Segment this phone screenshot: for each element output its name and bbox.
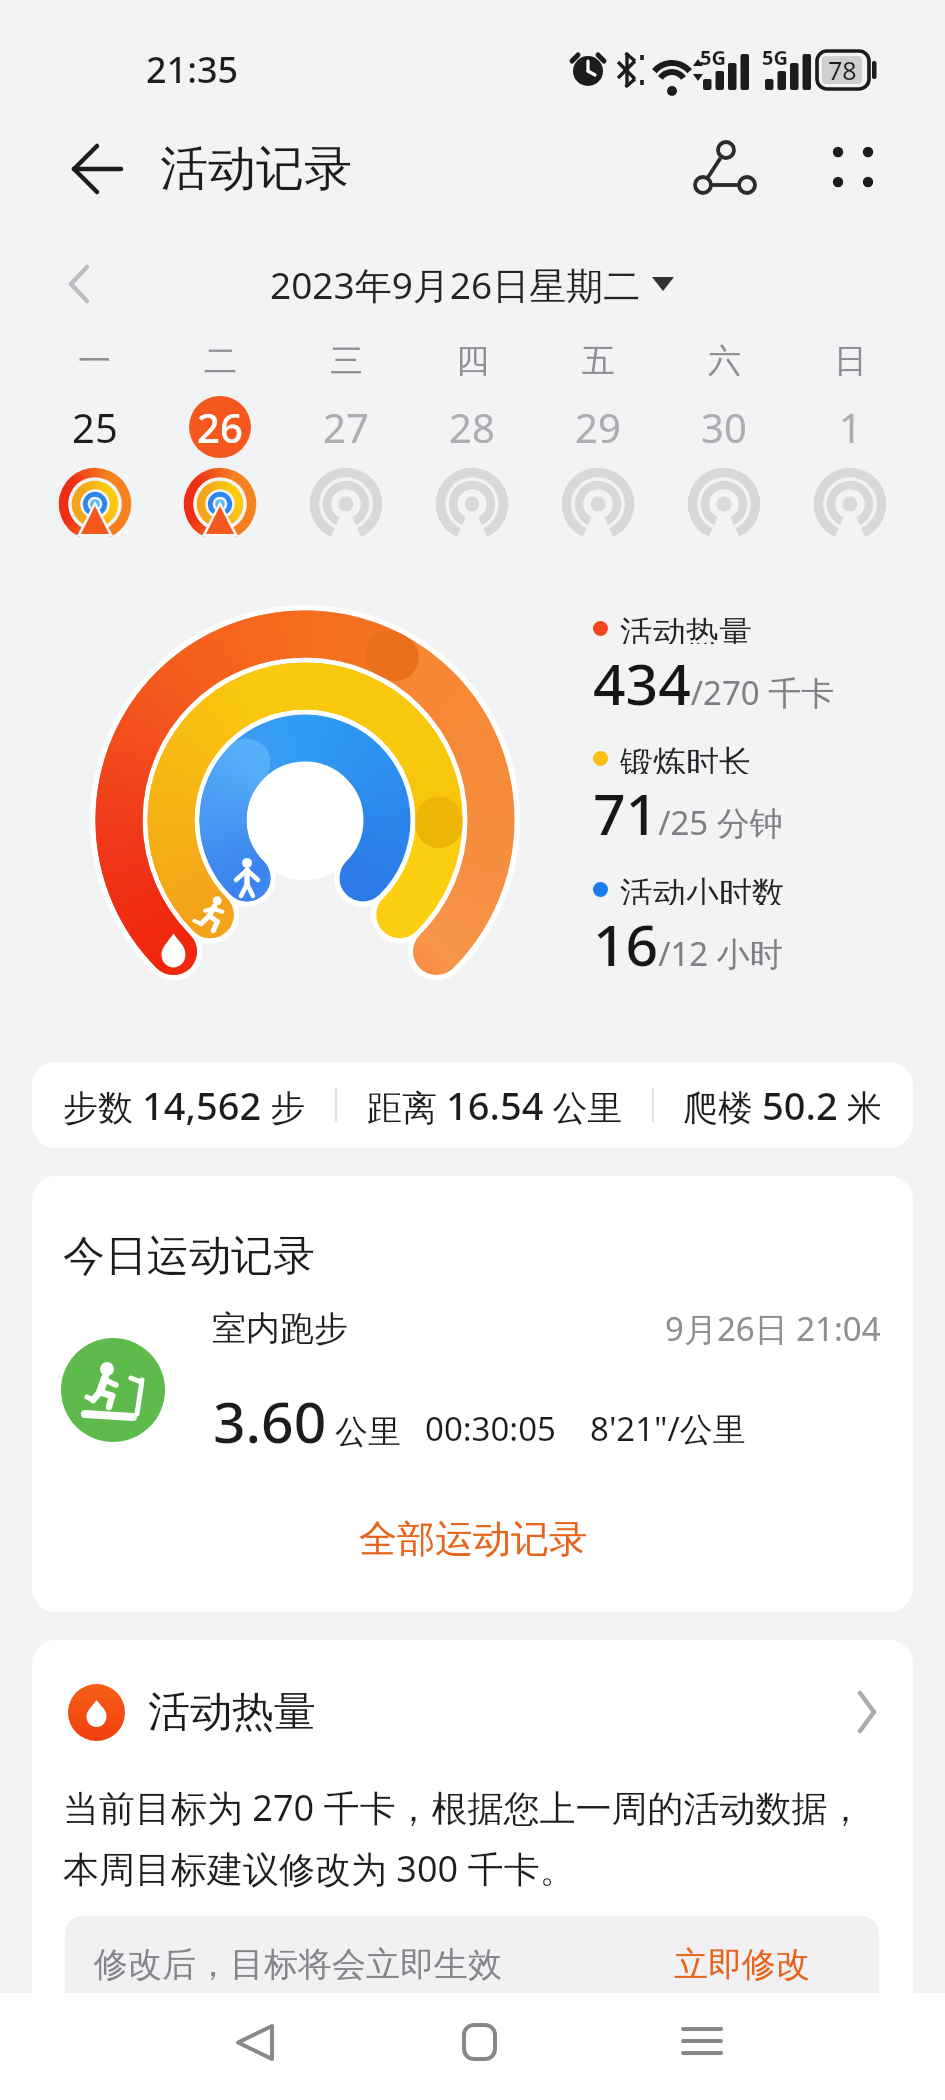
staticText: 21:35 (146, 45, 239, 94)
staticText: 今日运动记录 (63, 1230, 315, 1283)
staticText: 3.60 公里 (213, 1382, 401, 1460)
staticText: 五 (582, 340, 615, 382)
button[interactable]: 26 (189, 396, 251, 458)
staticText: 步数 14,562 步 (63, 1079, 306, 1131)
staticText: 25 (72, 400, 118, 454)
staticText: 434/270 千卡 (593, 644, 835, 722)
button[interactable] (690, 130, 770, 206)
button[interactable] (315, 1993, 630, 2100)
staticText: 本周目标建议修改为 300 千卡。 (63, 1844, 576, 1893)
staticText: 5G (700, 44, 726, 71)
button[interactable] (630, 1993, 945, 2100)
staticText: 1 (839, 400, 862, 454)
staticText: 六 (708, 340, 741, 382)
staticText: 当前目标为 270 千卡，根据您上一周的活动数据， (63, 1783, 864, 1832)
staticText: 78 (828, 53, 857, 87)
staticText: 全部运动记录 (359, 1515, 587, 1563)
button[interactable] (820, 130, 896, 206)
staticText: 30 (701, 400, 747, 454)
staticText: 2023年9月26日星期二 (270, 259, 641, 310)
staticText: 27 (323, 400, 369, 454)
staticText: 锻炼时长 (620, 742, 752, 774)
staticText: 28 (449, 400, 495, 454)
staticText: 16/12 小时 (593, 905, 783, 983)
staticText: 一 (78, 340, 111, 382)
staticText: 距离 16.54 公里 (367, 1079, 623, 1131)
staticText: 二 (204, 340, 237, 382)
staticText: 00:30:05 (425, 1406, 556, 1451)
staticText: 活动小时数 (620, 873, 785, 905)
staticText: 修改后，目标将会立即生效 (94, 1943, 502, 1986)
staticText: 71/25 分钟 (593, 774, 783, 852)
staticText: 活动热量 (620, 612, 752, 644)
button[interactable]: 立即修改 (637, 1919, 847, 2009)
staticText: 26 (197, 400, 243, 454)
staticText: 活动记录 (160, 139, 352, 199)
button[interactable]: 步数 14,562 步 (32, 1062, 913, 1148)
staticText: 室内跑步 (212, 1307, 348, 1350)
staticText: 四 (456, 340, 489, 382)
staticText: 活动热量 (148, 1686, 316, 1739)
button[interactable]: 2023年9月26日星期二 (0, 244, 945, 324)
staticText: 29 (575, 400, 621, 454)
staticText: 5G (762, 44, 788, 71)
staticText: 爬楼 50.2 米 (683, 1079, 882, 1131)
staticText: 9月26日 21:04 (665, 1306, 881, 1351)
button[interactable] (0, 1993, 315, 2100)
button[interactable] (32, 1640, 913, 1750)
staticText: 日 (834, 340, 867, 382)
button[interactable] (50, 138, 114, 198)
staticText: 8'21"/公里 (590, 1406, 746, 1451)
button[interactable]: 全部运动记录 (32, 1500, 913, 1578)
staticText: 三 (330, 340, 363, 382)
staticText: 立即修改 (674, 1943, 810, 1986)
